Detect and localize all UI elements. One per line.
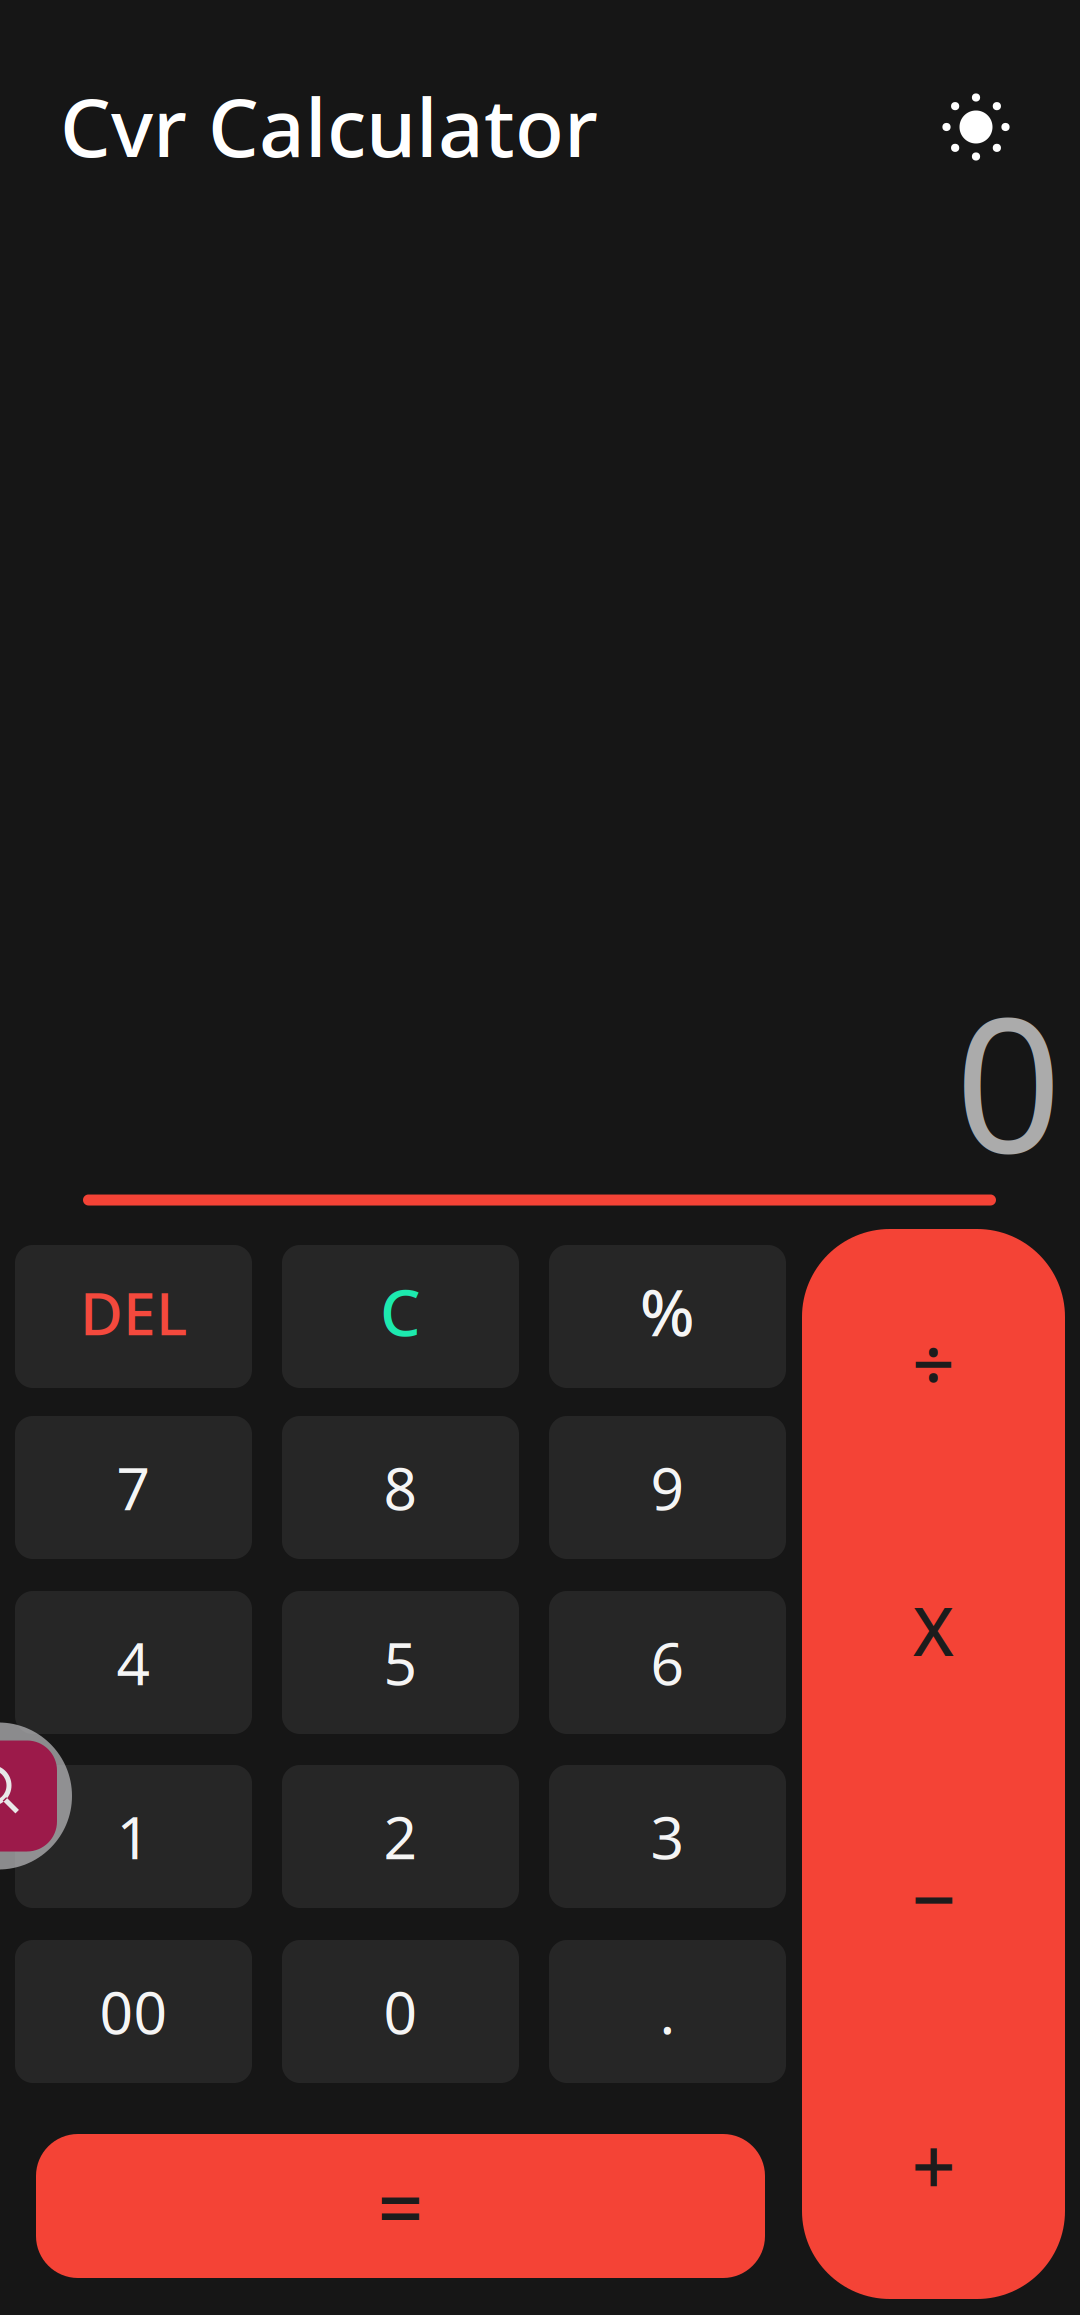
button[interactable]: . xyxy=(549,1940,786,2083)
staticText: 00 xyxy=(99,1972,167,2050)
staticText: X xyxy=(913,1586,954,1674)
staticText: = xyxy=(377,2153,423,2259)
staticText: 9 xyxy=(650,1448,684,1526)
staticText: ÷ xyxy=(912,1313,955,1412)
staticText: . xyxy=(659,1972,675,2050)
staticText: 3 xyxy=(650,1797,684,1875)
button[interactable]: Search xyxy=(0,1722,72,1869)
button[interactable]: DEL xyxy=(15,1245,252,1388)
staticText: − xyxy=(911,1846,955,1949)
staticText: 0 xyxy=(955,956,1062,1204)
staticText: C xyxy=(380,1269,421,1354)
staticText: Cvr Calculator xyxy=(60,73,598,179)
staticText: % xyxy=(640,1269,695,1354)
staticText: 2 xyxy=(383,1797,417,1875)
staticText: 6 xyxy=(650,1623,684,1701)
staticText: DEL xyxy=(80,1273,187,1351)
button[interactable]: Divide xyxy=(802,1229,1065,1496)
button[interactable]: = xyxy=(36,2134,765,2278)
staticText: 8 xyxy=(383,1448,417,1526)
button[interactable]: 7 xyxy=(15,1416,252,1559)
button[interactable]: 6 xyxy=(549,1591,786,1734)
button[interactable]: Toggle brightness xyxy=(928,79,1024,175)
button[interactable]: Add xyxy=(802,2031,1065,2299)
button[interactable]: 3 xyxy=(549,1765,786,1908)
button[interactable]: Multiply xyxy=(802,1496,1065,1764)
button[interactable]: 2 xyxy=(282,1765,519,1908)
staticText: + xyxy=(911,2114,955,2217)
button[interactable]: 1 xyxy=(15,1765,252,1908)
button[interactable]: 0 xyxy=(282,1940,519,2083)
staticText: 1 xyxy=(116,1797,150,1875)
button[interactable]: % xyxy=(549,1245,786,1388)
button[interactable]: 5 xyxy=(282,1591,519,1734)
button[interactable]: 00 xyxy=(15,1940,252,2083)
button[interactable]: C xyxy=(282,1245,519,1388)
button[interactable]: Subtract xyxy=(802,1764,1065,2031)
button[interactable]: 9 xyxy=(549,1416,786,1559)
staticText: 0 xyxy=(383,1972,417,2050)
button[interactable]: 4 xyxy=(15,1591,252,1734)
staticText: 4 xyxy=(116,1623,150,1701)
staticText: 5 xyxy=(383,1623,417,1701)
staticText: 7 xyxy=(116,1448,150,1526)
button[interactable]: 8 xyxy=(282,1416,519,1559)
